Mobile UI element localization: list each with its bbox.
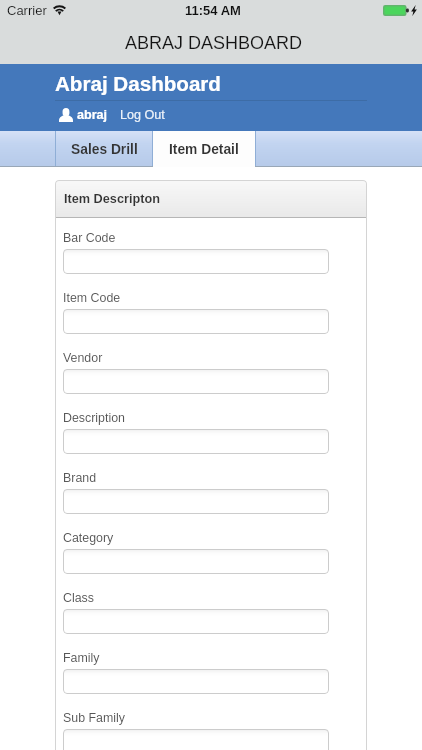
button[interactable]: Bar Code input field (63, 249, 329, 274)
staticText: Item Detail (169, 142, 239, 157)
button[interactable]: Sales Drill (56, 131, 153, 167)
button[interactable]: Log Out (116, 104, 169, 126)
button[interactable]: Sub Family input field (63, 729, 329, 750)
staticText: Brand (63, 471, 97, 485)
button[interactable]: Brand input field (63, 489, 329, 514)
staticText: Item Descripton (64, 192, 160, 206)
staticText: Category (63, 531, 114, 545)
staticText: Family (63, 651, 100, 665)
staticText: Item Code (63, 291, 121, 305)
staticText: Abraj Dashboard (55, 72, 221, 95)
button[interactable]: Description input field (63, 429, 329, 454)
button[interactable]: Class input field (63, 609, 329, 634)
button[interactable]: abraj (55, 104, 110, 126)
staticText: 11:54 AM (185, 3, 241, 18)
button[interactable]: Category input field (63, 549, 329, 574)
staticText: Class (63, 591, 94, 605)
button[interactable]: Item Code input field (63, 309, 329, 334)
staticText: Description (63, 411, 125, 425)
staticText: ABRAJ DASHBOARD (125, 33, 303, 53)
button[interactable]: Vendor input field (63, 369, 329, 394)
staticText: Sub Family (63, 711, 125, 725)
staticText: Sales Drill (71, 142, 138, 157)
staticText: Bar Code (63, 231, 116, 245)
staticText: Carrier (7, 3, 47, 18)
staticText: Log Out (120, 108, 165, 122)
staticText: abraj (77, 108, 108, 122)
button[interactable]: Item Detail (153, 131, 255, 167)
button[interactable]: Family input field (63, 669, 329, 694)
staticText: Vendor (63, 351, 103, 365)
